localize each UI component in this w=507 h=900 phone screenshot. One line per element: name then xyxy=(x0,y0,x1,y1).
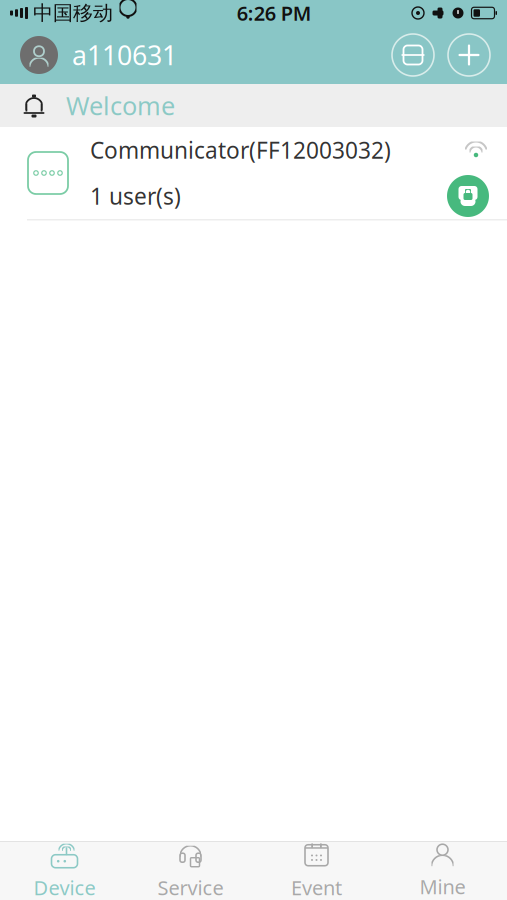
button[interactable]: Scan QR code xyxy=(389,31,437,79)
button[interactable]: a110631 xyxy=(20,30,177,80)
button[interactable]: Mine xyxy=(379,842,505,900)
staticText: 6:26 PM xyxy=(237,0,312,26)
button[interactable]: Device xyxy=(1,842,127,900)
staticText: a110631 xyxy=(72,37,177,73)
staticText: Welcome xyxy=(66,89,175,122)
button[interactable]: Add device xyxy=(445,31,493,79)
button[interactable]: Communicator(FF12003032) xyxy=(0,127,507,220)
button[interactable]: Service xyxy=(127,842,253,900)
staticText: Event xyxy=(291,874,342,900)
staticText: 1 user(s) xyxy=(90,181,181,211)
staticText: Mine xyxy=(419,873,465,900)
staticText: Communicator(FF12003032) xyxy=(90,135,391,165)
staticText: 中国移动 xyxy=(33,1,113,25)
button[interactable]: Event xyxy=(253,842,379,900)
staticText: Service xyxy=(157,874,223,900)
staticText: Device xyxy=(33,874,95,900)
